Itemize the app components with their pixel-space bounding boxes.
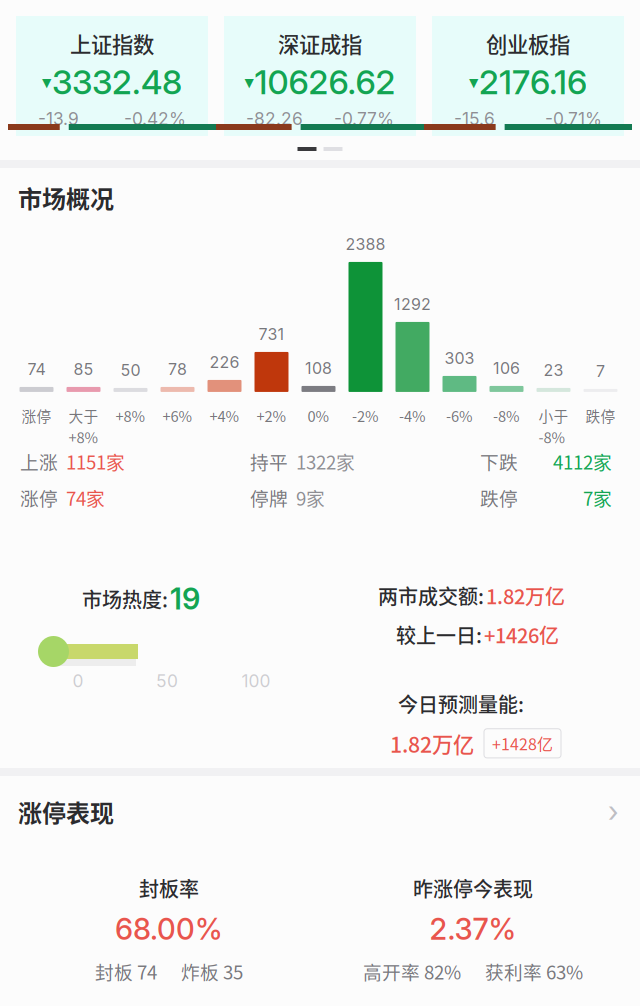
staticText: 封板 74 bbox=[95, 958, 157, 985]
staticText: 19 bbox=[170, 581, 200, 616]
staticText: 50 bbox=[120, 361, 140, 380]
staticText: -0.71% bbox=[545, 108, 602, 129]
staticText: -8% bbox=[493, 405, 520, 426]
staticText: 较上一日: bbox=[396, 620, 482, 649]
staticText: -4% bbox=[399, 405, 426, 426]
staticText: -0.42% bbox=[124, 108, 186, 129]
staticText: -6% bbox=[446, 405, 473, 426]
staticText: 跌停 bbox=[480, 484, 518, 511]
staticText: 2.37% bbox=[429, 911, 516, 947]
staticText: -15.6 bbox=[454, 108, 495, 129]
staticText: +1428亿 bbox=[492, 732, 553, 755]
staticText: 停牌 bbox=[250, 484, 288, 511]
staticText: 1.82万亿 bbox=[486, 581, 565, 610]
staticText: 大于 +8% bbox=[68, 405, 98, 447]
staticText: 0 bbox=[72, 670, 83, 691]
staticText: 108 bbox=[305, 359, 332, 378]
staticText: 市场热度: bbox=[82, 584, 168, 613]
staticText: 创业板指 bbox=[486, 28, 570, 59]
staticText: 两市成交额: bbox=[378, 581, 484, 610]
staticText: 2388 bbox=[345, 235, 385, 254]
staticText: 下跌 bbox=[480, 448, 518, 475]
staticText: -0.77% bbox=[334, 108, 394, 129]
staticText: 涨停表现 bbox=[18, 794, 114, 829]
staticText: 2176.16 bbox=[479, 62, 587, 102]
staticText: 1292 bbox=[394, 295, 431, 314]
staticText: 市场概况 bbox=[18, 180, 114, 215]
staticText: 303 bbox=[444, 349, 474, 368]
staticText: 涨停 bbox=[21, 405, 51, 426]
staticText: +6% bbox=[162, 405, 192, 426]
staticText: 今日预测量能: bbox=[398, 689, 524, 718]
staticText: -13.9 bbox=[38, 108, 79, 129]
button[interactable]: 涨停表现 bbox=[0, 776, 640, 841]
staticText: +4% bbox=[209, 405, 239, 426]
staticText: 深证成指 bbox=[278, 28, 362, 59]
staticText: 9家 bbox=[296, 484, 325, 511]
staticText: 23 bbox=[543, 361, 563, 380]
staticText: 50 bbox=[156, 670, 178, 691]
staticText: 74家 bbox=[66, 484, 105, 511]
staticText: 68.00% bbox=[115, 911, 223, 947]
staticText: +1426亿 bbox=[484, 620, 559, 649]
staticText: 3332.48 bbox=[52, 62, 182, 102]
staticText: 4112家 bbox=[553, 448, 612, 475]
staticText: 涨停 bbox=[20, 484, 58, 511]
staticText: › bbox=[608, 794, 618, 829]
staticText: ▾ bbox=[42, 71, 51, 93]
staticText: 获利率 63% bbox=[485, 958, 583, 985]
staticText: ▾ bbox=[244, 71, 253, 93]
staticText: +8% bbox=[115, 405, 145, 426]
staticText: 昨涨停今表现 bbox=[413, 873, 533, 902]
staticText: -82.26 bbox=[246, 108, 303, 129]
staticText: 85 bbox=[73, 360, 93, 379]
staticText: +2% bbox=[256, 405, 286, 426]
staticText: 78 bbox=[168, 360, 187, 379]
staticText: 106 bbox=[493, 359, 520, 378]
staticText: 1.82万亿 bbox=[390, 728, 474, 759]
staticText: 731 bbox=[258, 325, 284, 344]
staticText: 上涨 bbox=[20, 448, 58, 475]
staticText: 10626.62 bbox=[254, 62, 395, 102]
staticText: 1322家 bbox=[296, 448, 355, 475]
staticText: 跌停 bbox=[585, 405, 615, 426]
staticText: 7 bbox=[596, 362, 605, 381]
staticText: -2% bbox=[352, 405, 379, 426]
staticText: ▾ bbox=[469, 71, 478, 93]
staticText: 226 bbox=[209, 353, 239, 372]
staticText: 封板率 bbox=[139, 873, 199, 902]
staticText: 上证指数 bbox=[70, 28, 154, 59]
staticText: 小于 -8% bbox=[538, 405, 568, 447]
staticText: 100 bbox=[241, 670, 270, 691]
staticText: 74 bbox=[27, 360, 45, 379]
staticText: 高开率 82% bbox=[363, 958, 461, 985]
staticText: 7家 bbox=[583, 484, 612, 511]
staticText: 炸板 35 bbox=[181, 958, 243, 985]
staticText: 1151家 bbox=[66, 448, 125, 475]
staticText: 持平 bbox=[250, 448, 288, 475]
staticText: 0% bbox=[307, 405, 329, 426]
